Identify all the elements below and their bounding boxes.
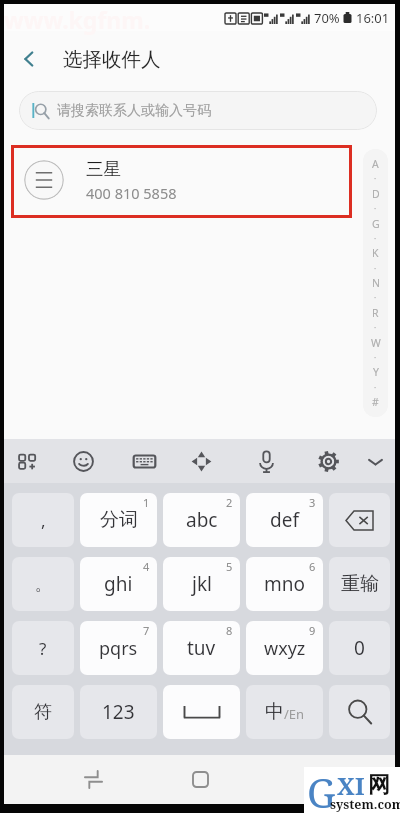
staticText: 70% <box>314 9 340 27</box>
staticText: 3 <box>309 495 316 510</box>
staticText: 9 <box>309 623 316 638</box>
staticText: W <box>371 336 381 350</box>
button[interactable]: wxyz <box>246 621 323 675</box>
staticText: · <box>374 203 377 214</box>
staticText: X <box>337 769 355 802</box>
button[interactable]: 中 <box>246 685 323 739</box>
button[interactable]: Keyboard layout <box>118 439 170 483</box>
staticText: ghi <box>104 571 133 597</box>
staticText: , <box>41 509 46 532</box>
button[interactable]: ghi <box>80 557 157 611</box>
staticText: pqrs <box>99 636 138 661</box>
button[interactable]: def <box>246 493 323 547</box>
staticText: I <box>355 769 365 802</box>
staticText: R <box>372 306 379 320</box>
staticText: mno <box>264 571 306 597</box>
staticText: 6 <box>309 559 316 574</box>
staticText: · <box>374 322 377 333</box>
button[interactable]: 符 <box>12 685 74 739</box>
button[interactable]: 请搜索联系人或输入号码 <box>19 91 377 130</box>
staticText: def <box>270 507 299 533</box>
staticText: 16:01 <box>356 9 390 27</box>
staticText: system.com <box>330 796 400 813</box>
staticText: · <box>374 292 377 303</box>
button[interactable]: 三星 <box>11 145 352 218</box>
staticText: 0 <box>354 635 365 661</box>
staticText: 2 <box>226 495 233 510</box>
button[interactable]: Alphabet index <box>363 149 388 417</box>
staticText: 三星 <box>86 158 121 180</box>
staticText: jkl <box>192 571 212 597</box>
staticText: 符 <box>34 701 52 724</box>
staticText: 7 <box>143 623 150 638</box>
staticText: # <box>372 395 379 409</box>
staticText: /En <box>284 705 305 723</box>
staticText: wxyz <box>264 636 306 661</box>
staticText: N <box>372 276 380 290</box>
staticText: · <box>374 233 377 244</box>
button[interactable]: Apps <box>2 439 54 483</box>
button[interactable]: , <box>12 493 74 547</box>
staticText: D <box>372 187 380 201</box>
button[interactable]: 。 <box>12 557 74 611</box>
staticText: abc <box>186 507 218 533</box>
button[interactable]: mno <box>246 557 323 611</box>
staticText: 选择收件人 <box>63 47 161 72</box>
button[interactable]: Back <box>4 31 54 87</box>
staticText: A <box>372 157 379 171</box>
staticText: 1 <box>143 495 150 510</box>
button[interactable]: Recent apps <box>61 755 125 804</box>
button[interactable]: abc <box>163 493 240 547</box>
button[interactable]: tuv <box>163 621 240 675</box>
button[interactable]: Backspace <box>329 493 390 547</box>
button[interactable]: Search <box>329 685 390 739</box>
staticText: G <box>372 217 380 231</box>
button[interactable]: Back <box>275 755 339 804</box>
staticText: · <box>374 382 377 393</box>
staticText: G <box>307 765 336 811</box>
button[interactable]: Space <box>163 685 240 739</box>
staticText: 中 <box>265 700 284 724</box>
staticText: K <box>372 246 379 260</box>
button[interactable]: 分词 <box>80 493 157 547</box>
button[interactable]: Emoji <box>57 439 109 483</box>
button[interactable]: 重输 <box>329 557 390 611</box>
button[interactable]: ? <box>12 621 74 675</box>
staticText: 400 810 5858 <box>86 183 177 203</box>
staticText: 4 <box>143 559 150 574</box>
staticText: 分词 <box>100 508 138 532</box>
staticText: 网 <box>368 771 390 799</box>
button[interactable]: Settings <box>302 439 354 483</box>
button[interactable]: pqrs <box>80 621 157 675</box>
button[interactable]: Voice input <box>240 439 292 483</box>
staticText: 5 <box>226 559 233 574</box>
button[interactable]: Home <box>168 755 232 804</box>
button[interactable]: Collapse keyboard <box>349 439 400 483</box>
staticText: Y <box>373 365 379 379</box>
staticText: 。 <box>35 574 52 595</box>
button[interactable]: Move cursor <box>175 439 227 483</box>
staticText: 重输 <box>341 572 379 596</box>
staticText: 123 <box>102 699 135 725</box>
button[interactable]: 123 <box>80 685 157 739</box>
button[interactable]: jkl <box>163 557 240 611</box>
staticText: ? <box>39 637 47 660</box>
staticText: · <box>374 263 377 274</box>
staticText: · <box>374 352 377 363</box>
staticText: · <box>374 173 377 184</box>
staticText: 8 <box>226 623 233 638</box>
staticText: tuv <box>187 635 216 661</box>
staticText: 请搜索联系人或输入号码 <box>57 102 211 120</box>
button[interactable]: 0 <box>329 621 390 675</box>
